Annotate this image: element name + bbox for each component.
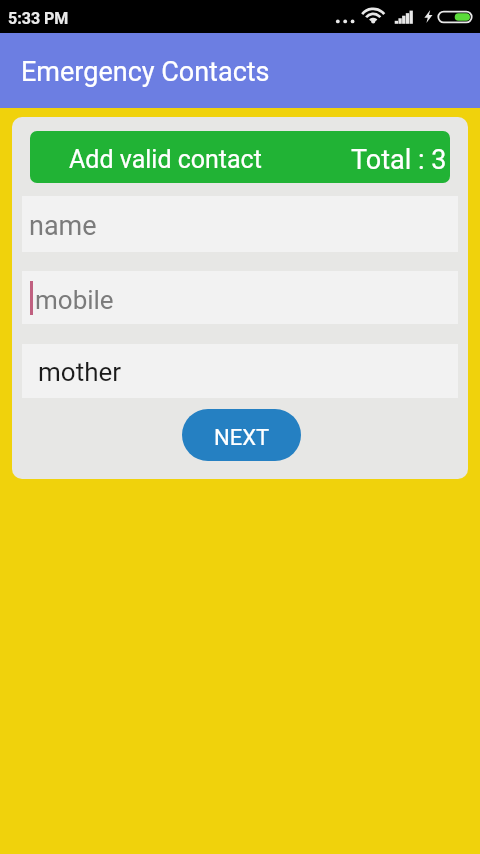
- button[interactable]: name: [22, 196, 458, 252]
- staticText: mother: [38, 357, 122, 387]
- button[interactable]: Add valid contact: [30, 131, 450, 183]
- staticText: name: [29, 210, 97, 242]
- button[interactable]: mother: [22, 344, 458, 398]
- staticText: NEXT: [214, 425, 270, 451]
- staticText: 5:33 PM: [8, 9, 69, 28]
- button[interactable]: mobile: [22, 271, 458, 324]
- staticText: mobile: [35, 285, 114, 315]
- staticText: Total : 3: [351, 144, 447, 176]
- button[interactable]: NEXT: [182, 409, 301, 461]
- staticText: Add valid contact: [69, 145, 262, 174]
- staticText: Emergency Contacts: [21, 56, 270, 88]
